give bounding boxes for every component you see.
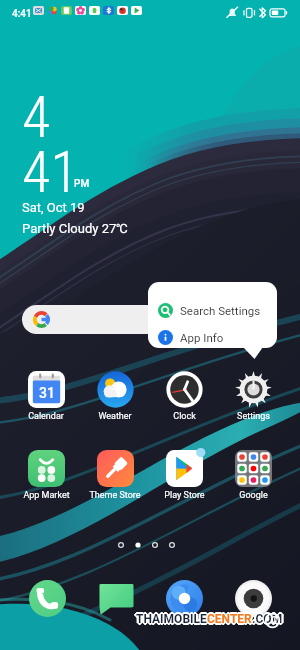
staticText: CENTER — [208, 613, 253, 627]
staticText: CENTER — [206, 612, 251, 626]
staticText: THAIMOBILE — [136, 614, 207, 628]
staticText: App Market — [23, 490, 70, 501]
staticText: Search Settings — [180, 304, 261, 317]
staticText: THAIMOBILE — [137, 611, 208, 625]
staticText: CENTER — [206, 611, 251, 625]
staticText: 31 — [39, 385, 55, 401]
button[interactable]: Clock — [150, 371, 218, 422]
staticText: THAIMOBILE — [137, 613, 208, 627]
staticText: CENTER — [206, 613, 251, 627]
button[interactable]: 31 — [12, 371, 80, 422]
staticText: Theme Store — [89, 490, 141, 501]
staticText: 4:41 — [12, 8, 32, 20]
staticText: .COM — [252, 611, 283, 625]
staticText: CENTER — [208, 612, 253, 626]
staticText: THAIMOBILE — [136, 612, 207, 626]
staticText: .COM — [252, 614, 283, 628]
staticText: .COM — [252, 613, 283, 627]
staticText: CENTER — [207, 611, 252, 625]
staticText: .COM — [253, 611, 284, 625]
staticText: CENTER — [205, 612, 250, 626]
staticText: CENTER — [207, 612, 252, 626]
button[interactable]: Browser — [166, 580, 203, 617]
staticText: CENTER — [207, 613, 252, 627]
staticText: Clock — [173, 411, 196, 422]
staticText: THAIMOBILE — [136, 613, 207, 627]
staticText: PM — [74, 178, 90, 190]
staticText: Google — [239, 490, 268, 501]
staticText: CENTER — [207, 610, 252, 624]
staticText: THAIMOBILE — [138, 612, 209, 626]
button[interactable]: Phone — [29, 580, 66, 617]
button[interactable]: Messages — [98, 580, 135, 617]
button[interactable]: Search Settings — [158, 297, 277, 324]
button[interactable]: Weather — [81, 371, 149, 422]
staticText: .COM — [250, 612, 281, 626]
staticText: THAIMOBILE — [135, 613, 206, 627]
staticText: THAIMOBILE — [135, 611, 206, 625]
staticText: 41 — [22, 138, 79, 206]
button[interactable]: Google Search — [22, 305, 194, 334]
staticText: Calendar — [28, 411, 64, 422]
staticText: THAIMOBILE — [135, 612, 206, 626]
button[interactable]: App Info — [158, 324, 277, 351]
staticText: CENTER — [207, 614, 252, 628]
staticText: Sat, Oct 19 — [22, 200, 85, 215]
button[interactable]: Camera — [235, 580, 272, 617]
staticText: .COM — [253, 613, 284, 627]
staticText: 4 — [22, 83, 51, 151]
button[interactable]: App Market — [12, 450, 80, 501]
staticText: THAIMOBILE — [136, 611, 207, 625]
staticText: THAIMOBILE — [134, 612, 205, 626]
staticText: .COM — [254, 612, 285, 626]
staticText: CENTER — [209, 612, 254, 626]
staticText: Partly Cloudy 27℃ — [22, 221, 128, 236]
staticText: App Info — [180, 331, 224, 344]
button[interactable]: Play Store — [150, 450, 218, 501]
staticText: .COM — [251, 613, 282, 627]
staticText: CENTER — [208, 611, 253, 625]
staticText: THAIMOBILE — [137, 612, 208, 626]
staticText: .COM — [253, 612, 284, 626]
button[interactable]: Theme Store — [81, 450, 149, 501]
staticText: .COM — [251, 611, 282, 625]
staticText: .COM — [252, 612, 283, 626]
button[interactable]: Google — [219, 450, 287, 501]
staticText: Weather — [98, 411, 132, 422]
staticText: .COM — [251, 612, 282, 626]
staticText: .COM — [252, 610, 283, 624]
button[interactable]: Settings — [219, 371, 287, 422]
staticText: Play Store — [164, 490, 205, 501]
staticText: Settings — [237, 411, 270, 422]
staticText: THAIMOBILE — [136, 610, 207, 624]
staticText: C — [271, 615, 277, 626]
